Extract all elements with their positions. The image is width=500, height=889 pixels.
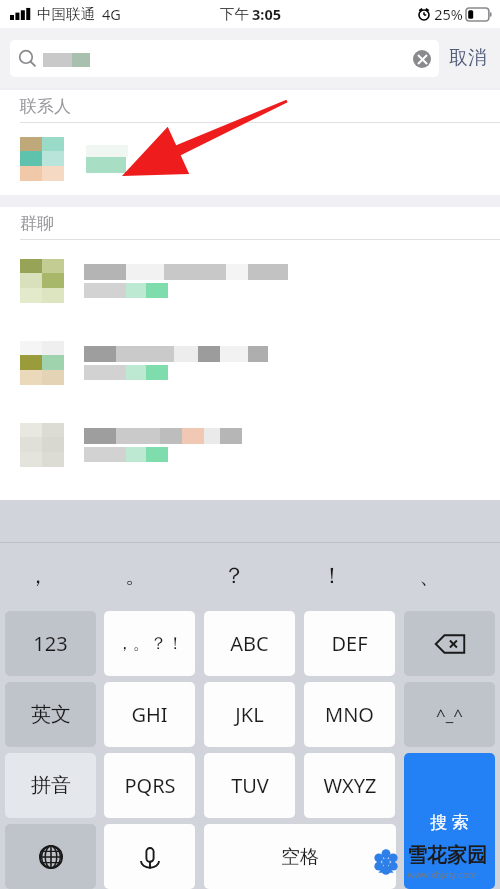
staticText: 拼音 bbox=[31, 773, 71, 798]
staticText: 搜 索 bbox=[430, 810, 469, 833]
button[interactable]: 拼音 bbox=[5, 753, 96, 818]
staticText: 4G bbox=[102, 4, 121, 24]
staticText: GHI bbox=[131, 701, 168, 728]
button[interactable]: MNO bbox=[304, 682, 395, 747]
button[interactable]: ^_^ bbox=[404, 682, 495, 747]
staticText: 。 bbox=[125, 562, 147, 590]
staticText: 25% bbox=[434, 4, 463, 24]
staticText: 雪花家园 bbox=[407, 843, 487, 868]
staticText: ！ bbox=[321, 562, 343, 590]
button[interactable]: Clear bbox=[10, 40, 439, 77]
staticText: DEF bbox=[331, 630, 368, 657]
button[interactable] bbox=[0, 240, 500, 322]
staticText: PQRS bbox=[124, 772, 176, 799]
staticText: WXYZ bbox=[323, 772, 377, 799]
staticText: 群聊 bbox=[20, 213, 54, 234]
button[interactable]: Clear bbox=[413, 50, 431, 68]
button[interactable]: ， bbox=[16, 543, 60, 608]
staticText: 3:05 bbox=[252, 4, 281, 24]
staticText: ABC bbox=[230, 630, 269, 657]
staticText: ^_^ bbox=[436, 703, 463, 726]
button[interactable]: ？ bbox=[212, 543, 256, 608]
button[interactable]: 英文 bbox=[5, 682, 96, 747]
button[interactable]: 123 bbox=[5, 611, 96, 676]
button[interactable]: Switch keyboard bbox=[5, 824, 96, 889]
button[interactable]: Voice input bbox=[104, 824, 195, 889]
button[interactable]: 。 bbox=[114, 543, 158, 608]
button[interactable] bbox=[0, 322, 500, 404]
button[interactable]: 空格 bbox=[204, 824, 396, 889]
staticText: www.xhjaty.com bbox=[407, 868, 477, 880]
staticText: MNO bbox=[325, 701, 374, 728]
button[interactable]: 取消 bbox=[439, 46, 490, 70]
button[interactable] bbox=[0, 404, 500, 486]
staticText: 取消 bbox=[449, 46, 487, 70]
staticText: 下午 bbox=[220, 5, 249, 23]
button[interactable]: ABC bbox=[204, 611, 295, 676]
button[interactable]: 搜 索 bbox=[404, 753, 495, 889]
staticText: 中国联通 bbox=[37, 5, 95, 23]
staticText: TUV bbox=[231, 772, 269, 799]
staticText: 空格 bbox=[281, 845, 319, 869]
button[interactable]: WXYZ bbox=[304, 753, 395, 818]
button[interactable]: ！ bbox=[310, 543, 354, 608]
staticText: JKL bbox=[235, 701, 264, 728]
button[interactable]: GHI bbox=[104, 682, 195, 747]
staticText: ，。？！ bbox=[116, 633, 184, 654]
button[interactable]: TUV bbox=[204, 753, 295, 818]
staticText: ？ bbox=[223, 562, 245, 590]
button[interactable]: DEF bbox=[304, 611, 395, 676]
button[interactable] bbox=[0, 123, 500, 195]
button[interactable]: Delete bbox=[404, 611, 495, 676]
staticText: 、 bbox=[419, 562, 441, 590]
button[interactable]: JKL bbox=[204, 682, 295, 747]
button[interactable]: 、 bbox=[408, 543, 452, 608]
staticText: 123 bbox=[33, 630, 68, 657]
button[interactable]: ，。？！ bbox=[104, 611, 195, 676]
button[interactable]: PQRS bbox=[104, 753, 195, 818]
staticText: ， bbox=[27, 562, 49, 590]
staticText: 联系人 bbox=[20, 96, 71, 117]
staticText: 英文 bbox=[31, 702, 71, 727]
